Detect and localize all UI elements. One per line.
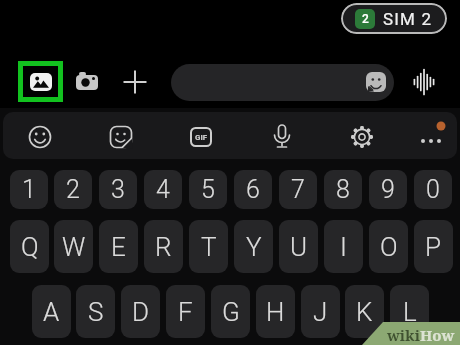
button[interactable] bbox=[20, 117, 60, 157]
button[interactable]: J bbox=[301, 285, 340, 338]
button[interactable]: 4 bbox=[144, 170, 182, 209]
staticText: 6 bbox=[246, 175, 260, 204]
staticText: Q bbox=[21, 232, 39, 262]
button[interactable]: 0 bbox=[414, 170, 452, 209]
button[interactable]: A bbox=[32, 285, 71, 338]
staticText: Y bbox=[246, 232, 262, 262]
staticText: T bbox=[201, 232, 217, 262]
button[interactable]: 9 bbox=[369, 170, 407, 209]
staticText: 5 bbox=[201, 175, 215, 204]
button[interactable]: 5 bbox=[189, 170, 227, 209]
button[interactable]: GIF bbox=[190, 127, 212, 147]
button[interactable]: O bbox=[369, 220, 408, 273]
button[interactable] bbox=[171, 64, 394, 101]
staticText: G bbox=[222, 297, 240, 327]
button[interactable]: D bbox=[121, 285, 160, 338]
staticText: S bbox=[88, 297, 104, 327]
staticText: wiki bbox=[387, 325, 420, 345]
staticText: How bbox=[420, 325, 455, 345]
staticText: H bbox=[266, 297, 285, 327]
button[interactable]: Y bbox=[234, 220, 273, 273]
button[interactable] bbox=[342, 117, 382, 157]
button[interactable] bbox=[411, 119, 451, 159]
staticText: 4 bbox=[156, 175, 170, 204]
button[interactable]: Q bbox=[10, 220, 49, 273]
button[interactable]: L bbox=[390, 285, 429, 338]
button[interactable]: 2 bbox=[54, 170, 92, 209]
staticText: 2 bbox=[362, 12, 369, 26]
staticText: D bbox=[132, 297, 150, 327]
staticText: R bbox=[155, 232, 172, 262]
button[interactable] bbox=[123, 70, 147, 94]
button[interactable] bbox=[18, 61, 63, 102]
staticText: I bbox=[340, 232, 347, 262]
staticText: U bbox=[290, 232, 308, 262]
staticText: 3 bbox=[111, 175, 125, 204]
button[interactable]: E bbox=[99, 220, 138, 273]
button[interactable]: G bbox=[211, 285, 250, 338]
button[interactable]: R bbox=[144, 220, 183, 273]
staticText: 1 bbox=[22, 175, 36, 204]
staticText: 8 bbox=[336, 175, 350, 204]
staticText: O bbox=[380, 232, 398, 262]
staticText: P bbox=[425, 232, 442, 262]
button[interactable] bbox=[74, 70, 101, 94]
staticText: W bbox=[62, 232, 86, 262]
staticText: F bbox=[178, 297, 193, 327]
button[interactable]: 1 bbox=[10, 170, 48, 209]
staticText: A bbox=[43, 297, 60, 327]
button[interactable] bbox=[262, 117, 302, 157]
button[interactable]: 7 bbox=[279, 170, 317, 209]
staticText: GIF bbox=[195, 133, 208, 142]
staticText: SIM 2 bbox=[383, 9, 433, 29]
staticText: K bbox=[356, 297, 373, 327]
staticText: 2 bbox=[66, 175, 80, 204]
button[interactable]: F bbox=[166, 285, 205, 338]
button[interactable]: H bbox=[256, 285, 295, 338]
button[interactable]: U bbox=[279, 220, 318, 273]
button[interactable]: 3 bbox=[99, 170, 137, 209]
staticText: J bbox=[313, 297, 328, 327]
button[interactable]: S bbox=[76, 285, 115, 338]
button[interactable] bbox=[101, 117, 141, 157]
button[interactable]: K bbox=[345, 285, 384, 338]
staticText: E bbox=[111, 232, 126, 262]
button[interactable] bbox=[366, 72, 386, 92]
staticText: L bbox=[403, 297, 417, 327]
staticText: 0 bbox=[426, 175, 440, 204]
button[interactable]: 6 bbox=[234, 170, 272, 209]
button[interactable]: I bbox=[324, 220, 363, 273]
button[interactable]: W bbox=[54, 220, 93, 273]
button[interactable]: P bbox=[414, 220, 453, 273]
button[interactable]: 8 bbox=[324, 170, 362, 209]
staticText: 9 bbox=[381, 175, 395, 204]
button[interactable] bbox=[411, 69, 437, 95]
button[interactable]: T bbox=[189, 220, 228, 273]
button[interactable]: 2 bbox=[341, 3, 447, 34]
staticText: 7 bbox=[291, 175, 305, 204]
